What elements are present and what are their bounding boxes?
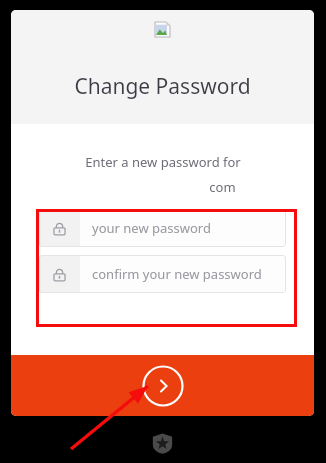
button[interactable]: confirm your new password bbox=[39, 255, 286, 293]
staticText: com bbox=[209, 178, 236, 196]
staticText: your new password bbox=[92, 219, 211, 237]
staticText: Change Password bbox=[74, 72, 251, 101]
staticText: Enter a new password for bbox=[85, 153, 241, 171]
button[interactable]: Submit bbox=[11, 355, 314, 416]
staticText: confirm your new password bbox=[92, 265, 262, 283]
button[interactable]: your new password bbox=[39, 209, 286, 247]
